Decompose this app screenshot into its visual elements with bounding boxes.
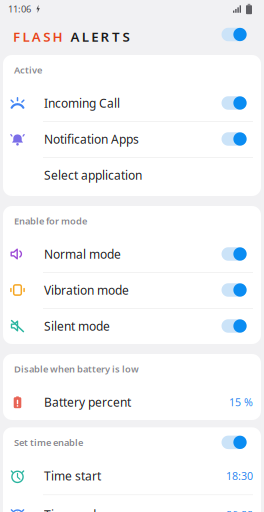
button[interactable]: Enable Flash Alerts (221, 30, 264, 43)
button[interactable]: Battery percent (3, 384, 261, 420)
staticText: Silent mode (44, 318, 110, 334)
button[interactable]: Notification Apps (3, 121, 261, 157)
staticText: Normal mode (44, 246, 121, 262)
staticText: S (43, 28, 50, 45)
staticText: S (122, 28, 129, 45)
staticText: A (32, 28, 41, 45)
staticText: 11:06 (8, 3, 31, 15)
button[interactable]: Select application (3, 157, 261, 193)
button[interactable]: Incoming Call (3, 85, 261, 121)
button[interactable]: Silent mode (3, 308, 261, 344)
staticText: Disable when battery is low (14, 363, 139, 375)
staticText: T (112, 28, 120, 45)
staticText: Vibration mode (44, 282, 129, 298)
staticText: Time start (44, 468, 101, 484)
staticText: Incoming Call (44, 95, 120, 111)
button[interactable]: Set time enable (3, 427, 261, 457)
button[interactable]: Time end (3, 497, 261, 512)
staticText: Notification Apps (44, 131, 139, 147)
staticText: Time end (44, 507, 96, 512)
staticText: 18:30 (226, 469, 253, 483)
staticText: H (53, 28, 63, 45)
staticText: L (22, 28, 29, 45)
staticText: F (13, 28, 20, 45)
staticText: Active (14, 64, 42, 76)
staticText: R (101, 28, 110, 45)
button[interactable]: Vibration mode (3, 272, 261, 308)
button[interactable]: Time start (3, 457, 261, 494)
staticText: 06:00 (226, 508, 253, 512)
staticText: Set time enable (14, 436, 83, 449)
button[interactable]: Normal mode (3, 236, 261, 272)
staticText: Select application (44, 167, 142, 183)
staticText: A (70, 28, 79, 45)
staticText: L (82, 28, 89, 45)
staticText: E (91, 28, 98, 45)
staticText: Battery percent (44, 394, 131, 410)
staticText: Enable for mode (14, 215, 87, 227)
staticText: 15 % (229, 395, 253, 409)
